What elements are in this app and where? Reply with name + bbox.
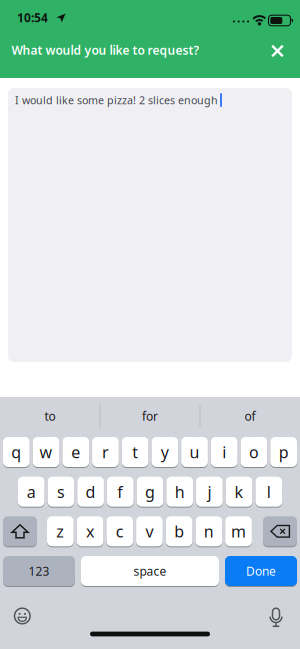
staticText: e xyxy=(71,441,80,463)
button[interactable]: h xyxy=(166,476,193,507)
button[interactable]: a xyxy=(18,476,45,507)
staticText: for xyxy=(142,408,158,424)
button[interactable]: x xyxy=(77,516,103,547)
staticText: v xyxy=(145,521,153,542)
staticText: t xyxy=(132,441,138,463)
staticText: 123 xyxy=(28,563,49,579)
button[interactable]: u xyxy=(181,436,208,467)
button[interactable]: Dictation xyxy=(266,607,286,629)
staticText: space xyxy=(133,563,166,579)
button[interactable]: of xyxy=(202,401,298,431)
button[interactable]: Emoji xyxy=(12,606,32,626)
button[interactable]: s xyxy=(48,476,74,507)
button[interactable]: r xyxy=(92,436,119,467)
staticText: u xyxy=(189,441,199,463)
button[interactable]: g xyxy=(137,476,163,507)
staticText: Done xyxy=(246,563,276,579)
staticText: I would like some pizza! 2 slices enough xyxy=(15,93,218,107)
staticText: m xyxy=(231,521,246,542)
button[interactable]: space xyxy=(81,555,219,586)
staticText: i xyxy=(222,441,226,463)
staticText: What would you like to request? xyxy=(11,42,199,58)
staticText: z xyxy=(56,521,64,542)
button[interactable]: f xyxy=(107,476,134,507)
button[interactable]: for xyxy=(102,401,198,431)
staticText: c xyxy=(116,521,124,542)
staticText: f xyxy=(117,481,123,502)
button[interactable]: q xyxy=(3,436,30,467)
button[interactable]: Close xyxy=(259,33,295,69)
button[interactable]: v xyxy=(136,516,163,547)
button[interactable]: 123 xyxy=(3,555,75,586)
staticText: o xyxy=(249,441,259,463)
button[interactable]: n xyxy=(195,516,222,547)
staticText: l xyxy=(267,481,271,502)
staticText: w xyxy=(39,441,52,463)
button[interactable]: p xyxy=(270,436,297,467)
button[interactable]: to xyxy=(2,401,98,431)
staticText: g xyxy=(145,481,155,502)
staticText: y xyxy=(161,441,169,463)
staticText: j xyxy=(207,481,211,502)
button[interactable]: i xyxy=(211,436,238,467)
staticText: 10:54 xyxy=(17,9,48,25)
button[interactable]: Done xyxy=(225,555,297,586)
staticText: q xyxy=(11,441,21,463)
button[interactable]: w xyxy=(33,436,59,467)
staticText: n xyxy=(204,521,214,542)
button[interactable]: b xyxy=(166,516,192,547)
staticText: p xyxy=(279,441,289,463)
button[interactable]: m xyxy=(225,516,252,547)
staticText: d xyxy=(86,481,96,502)
staticText: a xyxy=(27,481,36,502)
staticText: x xyxy=(86,521,94,542)
button[interactable]: o xyxy=(241,436,267,467)
staticText: r xyxy=(102,441,109,463)
button[interactable]: d xyxy=(77,476,104,507)
button[interactable]: l xyxy=(255,476,282,507)
staticText: s xyxy=(57,481,65,502)
button[interactable]: e xyxy=(62,436,89,467)
button[interactable]: Shift xyxy=(3,516,37,547)
button[interactable]: Delete xyxy=(263,516,297,547)
button[interactable]: j xyxy=(196,476,223,507)
staticText: k xyxy=(235,481,244,502)
button[interactable]: Request text xyxy=(8,88,292,362)
staticText: of xyxy=(244,408,255,424)
button[interactable]: k xyxy=(226,476,252,507)
button[interactable]: z xyxy=(47,516,74,547)
staticText: b xyxy=(174,521,184,542)
staticText: to xyxy=(44,408,55,424)
button[interactable]: c xyxy=(106,516,133,547)
staticText: h xyxy=(175,481,185,502)
button[interactable]: t xyxy=(122,436,148,467)
button[interactable]: y xyxy=(151,436,178,467)
